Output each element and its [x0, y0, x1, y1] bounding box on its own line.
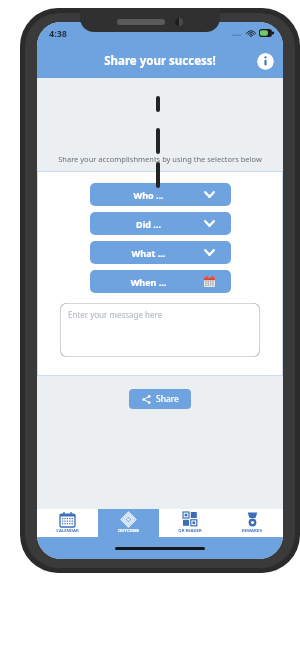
staticText: QR READER [159, 528, 221, 534]
button[interactable]: QR READER [159, 509, 221, 537]
button[interactable]: Who ... [90, 183, 231, 206]
staticText: CALENDAR [37, 528, 98, 534]
staticText: Enter your message here [68, 309, 163, 320]
button[interactable]: Did ... [90, 212, 231, 235]
button[interactable]: CALENDAR [37, 509, 98, 537]
staticText: What ... [90, 247, 219, 259]
button[interactable]: What ... [90, 241, 231, 264]
staticText: REWARDS [221, 528, 283, 534]
button[interactable]: When ... [90, 270, 231, 293]
staticText: Did ... [90, 218, 219, 230]
button[interactable]: Information [257, 53, 274, 70]
button[interactable]: REWARDS [221, 509, 283, 537]
button[interactable]: Enter your message here [60, 303, 260, 357]
staticText: Share your accomplishments by using the … [37, 154, 283, 164]
staticText: Share your success! [37, 53, 283, 69]
button[interactable]: Share [129, 389, 191, 409]
staticText: Who ... [90, 189, 219, 201]
staticText: When ... [90, 276, 219, 288]
staticText: OUTCOME [98, 528, 159, 534]
staticText: Share [156, 393, 179, 405]
staticText: 4:38 [49, 27, 67, 39]
button[interactable]: OUTCOME [98, 509, 159, 537]
